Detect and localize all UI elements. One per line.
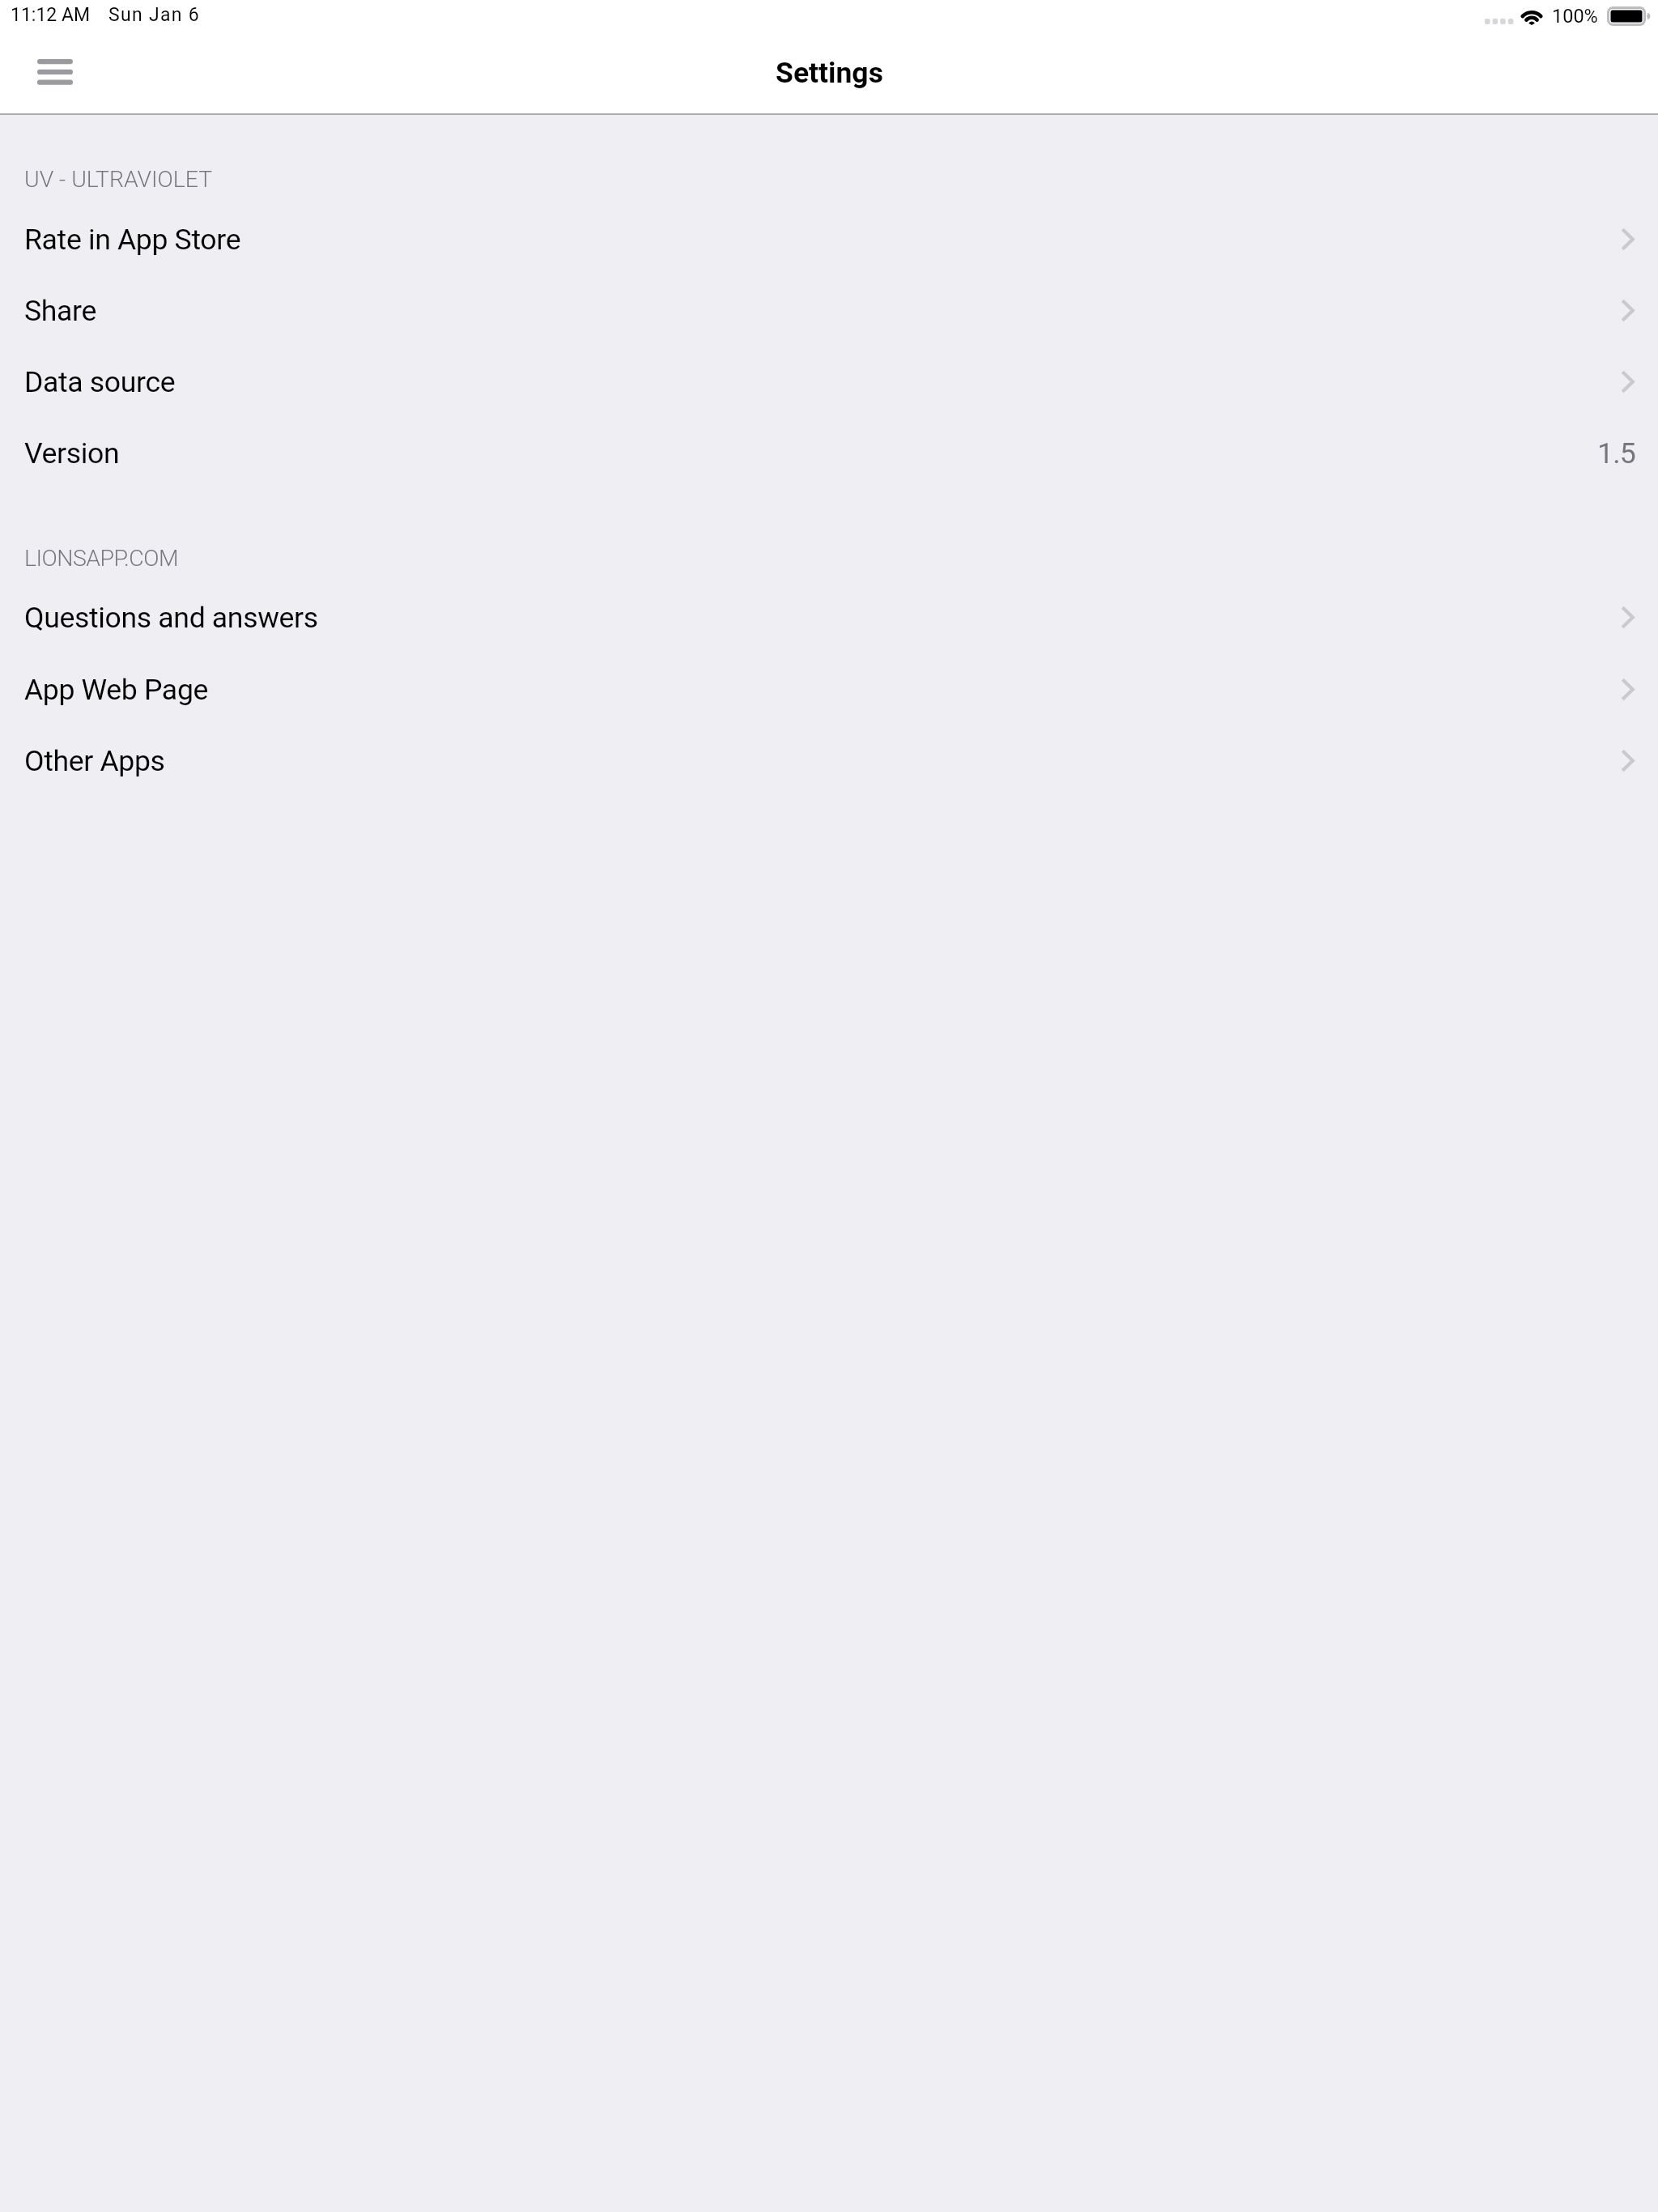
button[interactable]: Questions and answers (0, 581, 1658, 653)
staticText: Rate in App Store (24, 223, 241, 257)
button[interactable]: Data source (0, 346, 1658, 417)
staticText: App Web Page (24, 673, 209, 707)
staticText: Sun Jan 6 (108, 4, 200, 26)
staticText: Data source (24, 365, 176, 399)
button[interactable]: Version (0, 417, 1658, 488)
staticText: UV - ULTRAVIOLET (24, 166, 213, 193)
staticText: Questions and answers (24, 601, 318, 635)
staticText: 100% (1552, 5, 1598, 28)
staticText: Share (24, 294, 96, 328)
staticText: Settings (776, 56, 883, 90)
button[interactable]: App Web Page (0, 653, 1658, 725)
button[interactable]: Open navigation menu (21, 45, 89, 100)
staticText: LIONSAPP.COM (24, 545, 178, 572)
staticText: Version (24, 436, 120, 470)
button[interactable]: Other Apps (0, 725, 1658, 796)
staticText: 1.5 (1597, 436, 1635, 470)
button[interactable]: Share (0, 274, 1658, 346)
button[interactable]: Rate in App Store (0, 203, 1658, 274)
staticText: Other Apps (24, 744, 165, 778)
staticText: 11:12 AM (11, 4, 91, 26)
